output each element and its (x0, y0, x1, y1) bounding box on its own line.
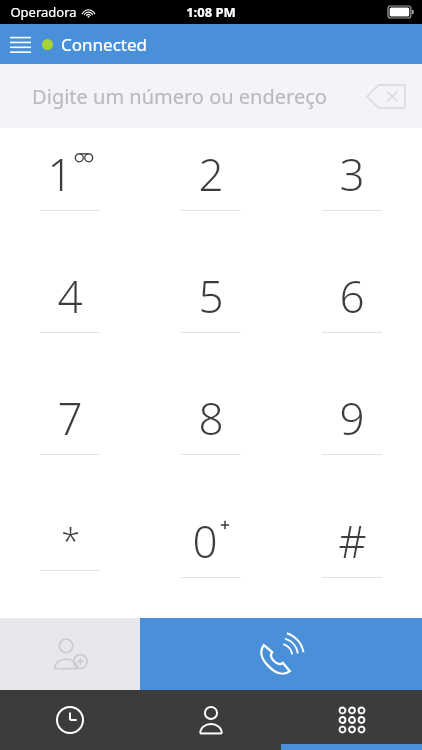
button[interactable]: 8 (140, 372, 281, 495)
button[interactable]: Connected (42, 33, 147, 56)
staticText: * (61, 518, 80, 564)
button[interactable]: Contacts (140, 690, 281, 750)
staticText: 5 (198, 266, 224, 326)
staticText: 8 (198, 388, 224, 448)
button[interactable]: Menu (0, 24, 40, 64)
button[interactable]: 3 (281, 128, 422, 250)
button[interactable]: 7 (0, 372, 140, 495)
staticText: 2 (198, 144, 224, 204)
button[interactable]: 9 (281, 372, 422, 495)
button[interactable]: 2 (140, 128, 281, 250)
button[interactable]: 0 (140, 495, 281, 618)
button[interactable]: 6 (281, 250, 422, 372)
staticText: 7 (57, 388, 83, 448)
button[interactable]: # (281, 495, 422, 618)
staticText: 1 (47, 144, 73, 204)
button[interactable]: Recents (0, 690, 140, 750)
staticText: Digite um número ou endereço (32, 83, 327, 110)
staticText: 3 (339, 144, 365, 204)
staticText: 0 (192, 511, 218, 571)
button[interactable]: * (0, 495, 140, 618)
button[interactable]: 4 (0, 250, 140, 372)
staticText: 9 (339, 388, 365, 448)
staticText: # (338, 511, 367, 571)
staticText: Connected (61, 33, 147, 56)
staticText: 1:08 PM (186, 3, 236, 21)
button[interactable]: Digite um número ou endereço (0, 64, 422, 128)
button[interactable]: Keypad (281, 690, 422, 750)
staticText: 4 (57, 266, 83, 326)
button[interactable]: 5 (140, 250, 281, 372)
staticText: 6 (339, 266, 365, 326)
button[interactable]: Call (140, 618, 422, 690)
button[interactable]: Backspace (362, 74, 410, 118)
button[interactable]: Add contact (0, 618, 140, 690)
staticText: Operadora (10, 3, 77, 21)
button[interactable]: 1 (0, 128, 140, 250)
